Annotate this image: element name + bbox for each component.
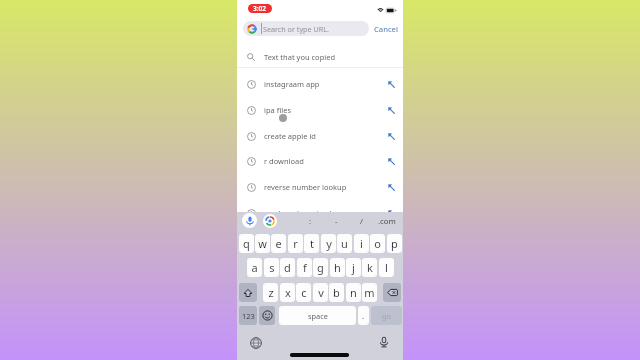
button[interactable]: f bbox=[297, 258, 312, 277]
staticText: f bbox=[303, 260, 307, 275]
staticText: s bbox=[269, 260, 275, 275]
button[interactable]: u bbox=[337, 234, 352, 253]
staticText: o bbox=[374, 236, 381, 251]
staticText: Cancel bbox=[374, 24, 398, 34]
button[interactable]: Search or type URL. bbox=[243, 21, 369, 36]
button[interactable]: Text that you copied bbox=[237, 46, 403, 67]
staticText: create apple id bbox=[264, 131, 316, 141]
button[interactable]: go bbox=[371, 306, 402, 325]
button[interactable]: 123 bbox=[239, 306, 257, 325]
staticText: reverse number lookup bbox=[264, 182, 347, 192]
staticText: v bbox=[318, 285, 324, 300]
button[interactable]: Dictation bbox=[377, 335, 391, 349]
staticText: m bbox=[364, 285, 375, 300]
staticText: k bbox=[367, 260, 373, 275]
staticText: c bbox=[301, 285, 307, 300]
button[interactable]: q bbox=[239, 234, 254, 253]
button[interactable]: w bbox=[255, 234, 270, 253]
staticText: u bbox=[341, 236, 348, 251]
button[interactable]: ipa files bbox=[237, 97, 403, 123]
button[interactable]: : bbox=[301, 216, 319, 227]
staticText: r bbox=[293, 236, 298, 251]
button[interactable]: / bbox=[352, 216, 370, 227]
button[interactable]: a bbox=[247, 258, 262, 277]
staticText: 123 bbox=[242, 311, 255, 321]
button[interactable]: m bbox=[362, 283, 377, 302]
staticText: j bbox=[352, 260, 355, 275]
staticText: x bbox=[285, 285, 291, 300]
other: Use this suggestion bbox=[387, 209, 396, 218]
staticText: : bbox=[309, 216, 312, 227]
staticText: z bbox=[268, 285, 274, 300]
other: Use this suggestion bbox=[387, 80, 396, 89]
other: Use this suggestion bbox=[387, 132, 396, 141]
staticText: instagraam app bbox=[264, 79, 320, 89]
button[interactable]: i bbox=[354, 234, 369, 253]
other: Use this suggestion bbox=[387, 106, 396, 115]
staticText: a bbox=[251, 260, 258, 275]
button[interactable]: e bbox=[271, 234, 286, 253]
button[interactable]: v bbox=[313, 283, 328, 302]
staticText: d bbox=[284, 260, 291, 275]
button[interactable]: Google Lens bbox=[263, 214, 277, 228]
button[interactable]: - bbox=[327, 216, 345, 227]
staticText: b bbox=[333, 285, 340, 300]
button[interactable]: Cancel bbox=[373, 24, 399, 34]
button[interactable]: r bbox=[288, 234, 303, 253]
button[interactable]: space bbox=[279, 306, 356, 325]
staticText: space bbox=[308, 311, 328, 321]
button[interactable]: Shift bbox=[239, 283, 257, 302]
staticText: . bbox=[362, 310, 365, 321]
button[interactable]: Backspace bbox=[383, 283, 401, 302]
staticText: Text that you copied bbox=[264, 52, 336, 62]
button[interactable]: l bbox=[379, 258, 394, 277]
button[interactable]: p bbox=[387, 234, 402, 253]
button[interactable]: g bbox=[313, 258, 328, 277]
button[interactable]: o bbox=[370, 234, 385, 253]
button[interactable]: j bbox=[346, 258, 361, 277]
button[interactable]: reverse number lookup bbox=[237, 174, 403, 200]
button[interactable]: y bbox=[321, 234, 336, 253]
button[interactable]: z bbox=[263, 283, 278, 302]
staticText: i bbox=[360, 236, 363, 251]
other: Use this suggestion bbox=[387, 157, 396, 166]
button[interactable]: Emoji bbox=[259, 306, 275, 325]
staticText: g bbox=[317, 260, 324, 275]
button[interactable]: c bbox=[296, 283, 311, 302]
staticText: romba azhaga irruke bbox=[264, 208, 338, 218]
staticText: n bbox=[350, 285, 357, 300]
staticText: ipa files bbox=[264, 105, 291, 115]
button[interactable]: . bbox=[358, 306, 369, 325]
button[interactable]: t bbox=[304, 234, 319, 253]
staticText: go bbox=[382, 311, 392, 321]
button[interactable]: s bbox=[264, 258, 279, 277]
button[interactable]: create apple id bbox=[237, 123, 403, 149]
staticText: t bbox=[310, 236, 314, 251]
button[interactable]: Recording 3:02 bbox=[248, 4, 272, 13]
other: Use this suggestion bbox=[387, 183, 396, 192]
button[interactable]: romba azhaga irruke bbox=[237, 200, 403, 226]
button[interactable]: d bbox=[280, 258, 295, 277]
staticText: w bbox=[258, 236, 267, 251]
staticText: r download bbox=[264, 156, 304, 166]
staticText: / bbox=[360, 216, 363, 227]
staticText: p bbox=[391, 236, 398, 251]
button[interactable]: n bbox=[346, 283, 361, 302]
button[interactable]: .com bbox=[378, 216, 396, 227]
staticText: - bbox=[335, 216, 338, 227]
staticText: h bbox=[334, 260, 341, 275]
button[interactable]: h bbox=[330, 258, 345, 277]
button[interactable]: r download bbox=[237, 148, 403, 174]
button[interactable]: x bbox=[280, 283, 295, 302]
button[interactable]: Switch keyboard bbox=[249, 336, 263, 350]
button[interactable]: k bbox=[362, 258, 377, 277]
staticText: e bbox=[275, 236, 282, 251]
button[interactable]: instagraam app bbox=[237, 71, 403, 97]
staticText: 3:02 bbox=[253, 4, 267, 13]
staticText: l bbox=[385, 260, 388, 275]
button[interactable]: b bbox=[329, 283, 344, 302]
button[interactable]: Voice search bbox=[242, 213, 257, 228]
staticText: Search or type URL. bbox=[263, 24, 329, 34]
staticText: q bbox=[243, 236, 250, 251]
staticText: .com bbox=[378, 216, 396, 227]
